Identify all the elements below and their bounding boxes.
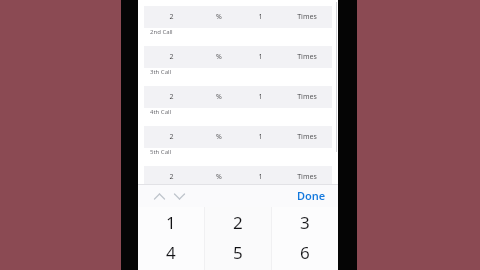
button[interactable]: 4 <box>138 237 204 267</box>
staticText: 1 <box>258 172 263 182</box>
button[interactable]: 2 <box>144 86 199 108</box>
staticText: Times <box>297 92 317 102</box>
staticText: 3th Call <box>150 68 172 76</box>
staticText: 3 <box>300 211 310 234</box>
staticText: % <box>216 52 222 62</box>
button[interactable]: 1 <box>238 46 282 68</box>
button[interactable]: 2 <box>204 207 271 237</box>
staticText: 4th Call <box>150 108 172 116</box>
button[interactable]: Next field <box>170 186 188 206</box>
button[interactable]: 1 <box>138 207 204 237</box>
staticText: 2nd Call <box>150 28 173 36</box>
button[interactable]: 1 <box>238 166 282 188</box>
staticText: Times <box>297 52 317 62</box>
button[interactable]: 2 <box>144 126 199 148</box>
staticText: 1 <box>166 211 176 234</box>
button[interactable]: 1 <box>238 86 282 108</box>
staticText: 5 <box>233 241 243 264</box>
staticText: 2 <box>169 92 174 102</box>
button[interactable]: 3 <box>271 207 338 237</box>
staticText: 2 <box>169 172 174 182</box>
staticText: 5th Call <box>150 148 172 156</box>
button[interactable]: % <box>199 126 238 148</box>
staticText: 1 <box>258 52 263 62</box>
staticText: % <box>216 132 222 142</box>
button[interactable]: 2 <box>144 6 199 28</box>
staticText: 2 <box>169 12 174 22</box>
button[interactable]: Times <box>282 86 332 108</box>
staticText: 1 <box>258 132 263 142</box>
button[interactable]: 6 <box>271 237 338 267</box>
staticText: % <box>216 172 222 182</box>
button[interactable]: % <box>199 86 238 108</box>
button[interactable]: % <box>199 46 238 68</box>
button[interactable]: % <box>199 6 238 28</box>
button[interactable]: 1 <box>238 126 282 148</box>
staticText: % <box>216 12 222 22</box>
staticText: 1 <box>258 12 263 22</box>
staticText: Done <box>297 188 326 203</box>
button[interactable]: Times <box>282 6 332 28</box>
button[interactable]: Previous field <box>150 186 168 206</box>
button[interactable]: Times <box>282 46 332 68</box>
staticText: % <box>216 92 222 102</box>
staticText: 4 <box>166 241 176 264</box>
staticText: 1 <box>258 92 263 102</box>
button[interactable]: 2 <box>144 46 199 68</box>
staticText: 2 <box>169 132 174 142</box>
staticText: 2 <box>169 52 174 62</box>
button[interactable]: 5 <box>204 237 271 267</box>
button[interactable]: 2 <box>144 166 199 188</box>
staticText: 6 <box>300 241 310 264</box>
button[interactable]: % <box>199 166 238 188</box>
button[interactable]: Done <box>293 186 330 205</box>
staticText: Times <box>297 132 317 142</box>
staticText: Times <box>297 172 317 182</box>
button[interactable]: Times <box>282 166 332 188</box>
staticText: Times <box>297 12 317 22</box>
button[interactable]: 1 <box>238 6 282 28</box>
button[interactable]: Times <box>282 126 332 148</box>
staticText: 2 <box>233 211 243 234</box>
